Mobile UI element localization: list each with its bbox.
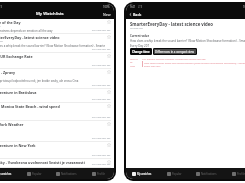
staticText: New York Weather bbox=[0, 122, 24, 127]
button[interactable]: My watches bbox=[0, 168, 18, 179]
staticText: My watches bbox=[137, 172, 152, 176]
staticText: youtube.com bbox=[0, 40, 3, 43]
other: Favourite bbox=[107, 70, 111, 74]
button[interactable]: My watches bbox=[126, 168, 158, 179]
staticText: Current value bbox=[130, 34, 150, 38]
staticText: CZK/EUR Exchange Rate bbox=[0, 54, 33, 59]
staticText: SmarterEveryDay - latest science video bbox=[130, 21, 214, 27]
staticText: Notifications bbox=[61, 172, 77, 176]
staticText: LTE bbox=[138, 5, 143, 9]
staticText: just a few secs ago bbox=[92, 48, 111, 51]
staticText: just a few secs ago bbox=[92, 154, 111, 157]
staticText: Back bbox=[133, 12, 142, 17]
button[interactable]: Notifications bbox=[50, 168, 82, 179]
staticText: Popular bbox=[172, 172, 182, 176]
staticText: Differences in a compact view bbox=[155, 50, 195, 54]
button[interactable]: Change time bbox=[130, 48, 152, 55]
staticText: just a few secs ago bbox=[92, 163, 111, 166]
staticText: just a few secs ago bbox=[92, 98, 111, 101]
staticText: Novinky - Vseobecna uvolnenost Sexisti j… bbox=[0, 160, 85, 165]
staticText: SmarterEveryDay - latest science video bbox=[0, 35, 60, 40]
staticText: My watches bbox=[0, 172, 12, 176]
staticText: just a few secs ago bbox=[92, 116, 111, 119]
button[interactable]: Santa Monica State Beach - wind speed bbox=[0, 103, 114, 121]
button[interactable]: Profile bbox=[82, 168, 114, 179]
staticText: just a few secs ago bbox=[92, 29, 111, 32]
button[interactable]: Popular bbox=[158, 168, 190, 179]
button[interactable]: SmarterEveryDay - latest science video bbox=[0, 34, 114, 53]
button[interactable]: Popular bbox=[18, 168, 50, 179]
staticText: Mar 31 at 4:08 bbox=[130, 57, 140, 68]
button[interactable]: iDnes - Zpravy bbox=[0, 69, 114, 89]
button[interactable]: Back bbox=[126, 10, 145, 19]
other: Favourite bbox=[107, 143, 111, 147]
staticText: youtube.com bbox=[130, 27, 143, 30]
button[interactable]: CZK/EUR Exchange Rate bbox=[0, 53, 114, 69]
button[interactable]: Profile bbox=[222, 168, 245, 179]
staticText: Profile bbox=[97, 172, 105, 176]
staticText: novinky.cz bbox=[0, 165, 1, 168]
other: Favourite bbox=[107, 90, 111, 94]
staticText: 100% bbox=[103, 5, 110, 9]
button[interactable]: Temperature in Bratislava bbox=[0, 89, 114, 103]
staticText: just a few secs ago bbox=[92, 64, 111, 67]
staticText: How does a whip break the sound barrier?… bbox=[144, 61, 245, 67]
button[interactable]: Temperature in New York bbox=[0, 142, 114, 159]
staticText: Temperature in Bratislava bbox=[0, 90, 37, 95]
button[interactable]: New bbox=[100, 12, 114, 17]
other: Favourite bbox=[107, 104, 111, 108]
staticText: Temperature in New York bbox=[0, 143, 36, 148]
other: Favourite bbox=[107, 122, 111, 126]
staticText: just a few secs ago bbox=[92, 137, 111, 140]
button[interactable]: Quote of the Day bbox=[0, 19, 114, 34]
staticText: How does a whip break the sound barrier?… bbox=[0, 44, 105, 48]
staticText: Santa Monica State Beach - wind speed bbox=[0, 104, 60, 109]
staticText: No. earliest bachus number of warning so… bbox=[142, 57, 206, 60]
staticText: Quote of the Day bbox=[0, 20, 21, 25]
other: Favourite bbox=[107, 35, 111, 39]
staticText: New bbox=[103, 12, 111, 17]
other: Favourite bbox=[107, 20, 111, 24]
staticText: 9:41 bbox=[130, 5, 136, 9]
other: Favourite bbox=[107, 54, 111, 58]
staticText: My Watchlists bbox=[36, 11, 64, 17]
staticText: LTE bbox=[0, 5, 3, 9]
staticText: just a few secs ago bbox=[92, 84, 111, 87]
button[interactable]: Differences in a compact view bbox=[153, 48, 197, 55]
staticText: Profile bbox=[237, 172, 245, 176]
other: Favourite bbox=[107, 160, 111, 164]
button[interactable]: Novinky - Vseobecna uvolnenost Sexisti j… bbox=[0, 159, 114, 168]
staticText: Zeman pristoupil odpocitelnou rok, jen k… bbox=[0, 79, 79, 83]
staticText: How does a whip break the sound barrier?… bbox=[130, 39, 245, 47]
button[interactable]: Notifications bbox=[190, 168, 222, 179]
staticText: 100% bbox=[243, 5, 245, 9]
staticText: quote.com bbox=[0, 25, 1, 28]
staticText: Popular bbox=[32, 172, 42, 176]
staticText: Change time bbox=[132, 50, 150, 54]
staticText: iDnes - Zpravy bbox=[0, 70, 16, 75]
button[interactable]: New York Weather bbox=[0, 121, 114, 142]
staticText: Notifications bbox=[201, 172, 217, 176]
staticText: Your greatness depends on emotion all th… bbox=[0, 29, 53, 33]
